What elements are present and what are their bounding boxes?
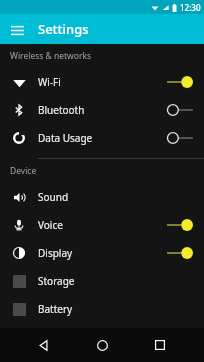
- staticText: Bluetooth: [38, 103, 85, 117]
- button[interactable]: Bluetooth switch: [166, 100, 194, 120]
- button[interactable]: Voice switch: [166, 215, 194, 235]
- staticText: Voice: [38, 218, 63, 232]
- button[interactable]: Display switch: [166, 243, 194, 263]
- button[interactable]: Wi-Fi switch: [166, 72, 194, 92]
- button[interactable]: Open navigation menu: [6, 18, 28, 40]
- button[interactable]: Data Usage switch: [166, 128, 194, 148]
- button[interactable]: Battery: [0, 295, 204, 323]
- button[interactable]: Display: [0, 239, 204, 267]
- button[interactable]: Recent apps: [146, 331, 174, 359]
- staticText: Wireless & networks: [10, 50, 92, 62]
- staticText: Sound: [38, 190, 69, 204]
- button[interactable]: Wi-Fi: [0, 68, 204, 96]
- button[interactable]: Bluetooth: [0, 96, 204, 124]
- staticText: 12:30: [180, 2, 201, 13]
- button[interactable]: Storage: [0, 267, 204, 295]
- staticText: Device: [10, 165, 37, 177]
- button[interactable]: Back: [30, 331, 58, 359]
- staticText: Battery: [38, 302, 73, 316]
- staticText: Storage: [38, 274, 75, 288]
- button[interactable]: Data Usage: [0, 124, 204, 152]
- button[interactable]: Voice: [0, 211, 204, 239]
- staticText: Display: [38, 246, 73, 260]
- button[interactable]: Sound: [0, 183, 204, 211]
- button[interactable]: Home: [88, 331, 116, 359]
- staticText: Data Usage: [38, 131, 93, 145]
- staticText: Wi-Fi: [38, 75, 61, 89]
- staticText: Settings: [38, 20, 89, 38]
